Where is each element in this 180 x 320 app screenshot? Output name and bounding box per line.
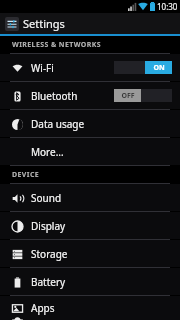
staticText: Storage [31,247,68,261]
button[interactable]: Bluetooth [0,82,180,109]
staticText: DEVICE [12,170,40,180]
staticText: Data usage [31,117,85,131]
staticText: ON [153,63,165,73]
staticText: Battery [31,275,66,289]
button[interactable]: Apps [0,296,180,320]
staticText: Settings [23,16,65,31]
staticText: 10:30 [157,1,178,12]
staticText: WIRELESS & NETWORKS [12,40,102,50]
button[interactable]: Storage [0,240,180,267]
staticText: Display [31,219,66,233]
button[interactable]: More... [0,138,180,165]
button[interactable]: Toggle off [114,89,172,102]
button[interactable]: Wi-Fi [0,54,180,81]
button[interactable]: Battery [0,268,180,295]
staticText: Wi-Fi [31,61,54,75]
button[interactable]: Sound [0,184,180,211]
staticText: Bluetooth [31,89,78,103]
staticText: More... [31,145,64,159]
staticText: Sound [31,191,62,205]
button[interactable]: Data usage [0,110,180,137]
button[interactable]: Toggle on [114,61,172,74]
staticText: Apps [31,301,55,315]
staticText: OFF [121,91,135,101]
button[interactable]: Display [0,212,180,239]
